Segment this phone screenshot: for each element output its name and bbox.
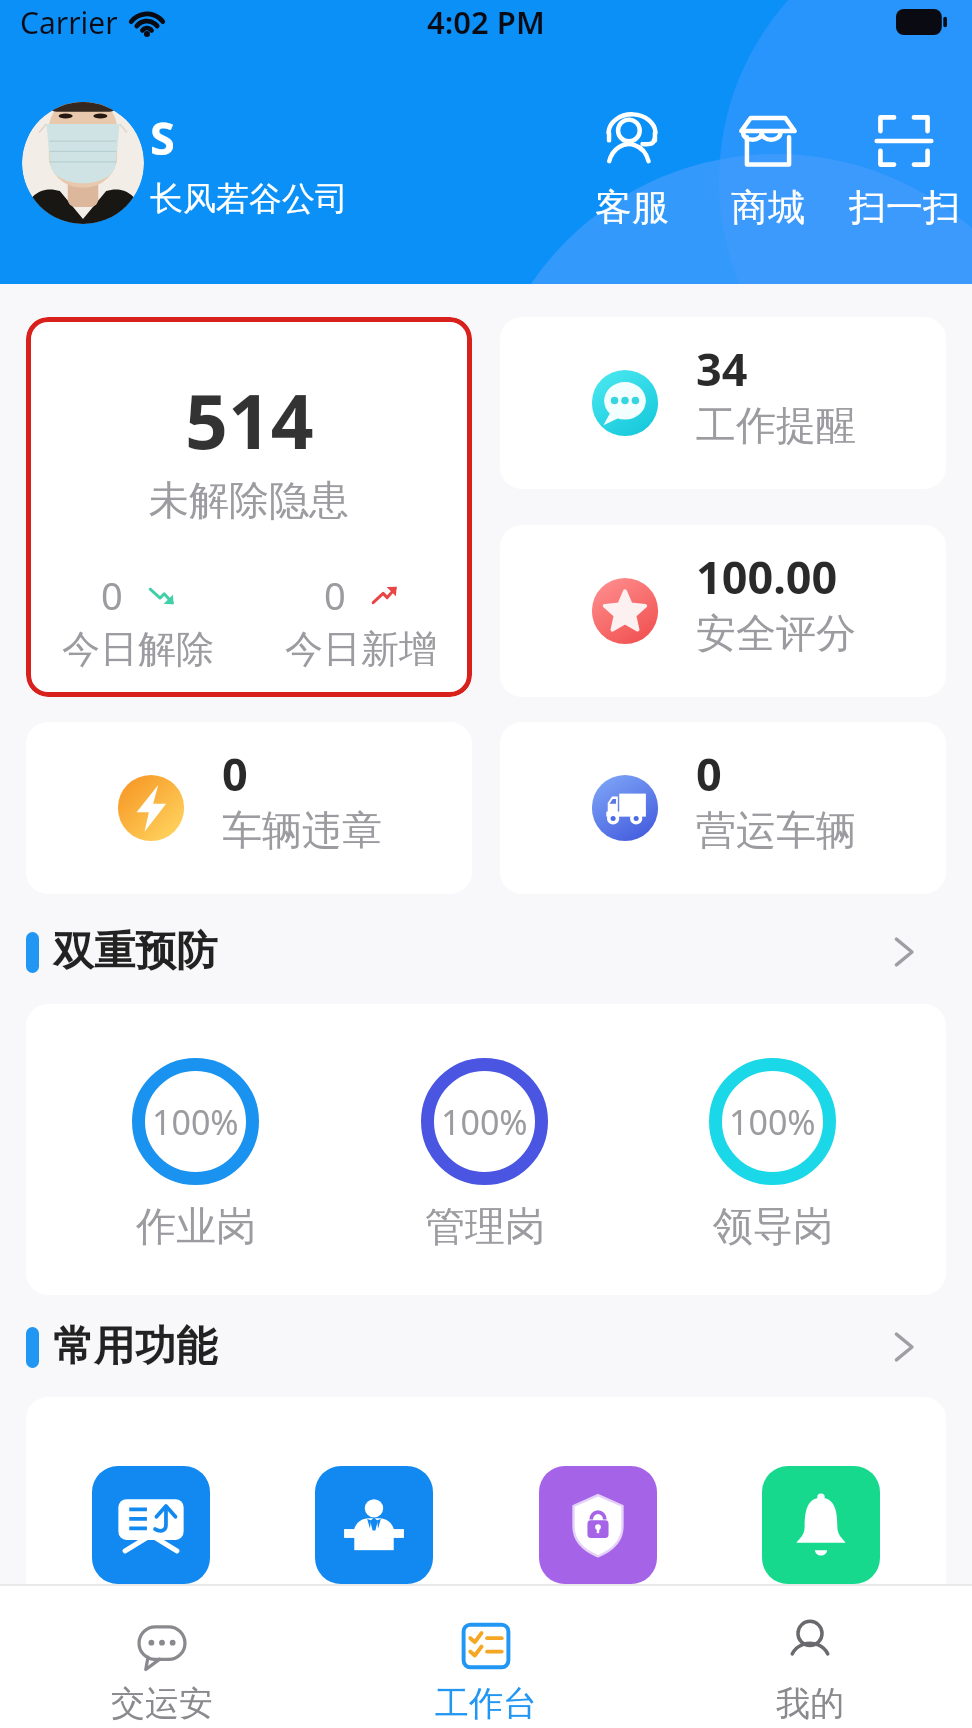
button[interactable]: 0 [500, 722, 946, 894]
staticText: 我的 [776, 1682, 844, 1725]
staticText: 34 [696, 338, 748, 399]
staticText: 扫一扫 [849, 184, 960, 231]
staticText: 未解除隐患 [149, 475, 349, 525]
button[interactable]: 商城 [700, 110, 836, 231]
staticText: 今日解除 [62, 625, 214, 673]
button[interactable]: 消息提醒 Alerts [762, 1466, 880, 1584]
staticText: 安全评分 [696, 608, 856, 658]
button[interactable]: 常用功能 [26, 1297, 946, 1397]
button[interactable]: 100% [709, 1058, 836, 1251]
staticText: 100% [441, 1099, 528, 1145]
button[interactable]: 双重预防 [26, 900, 946, 1004]
button[interactable]: 交运安 [0, 1618, 324, 1728]
staticText: 100% [152, 1099, 239, 1145]
button[interactable]: 514 [26, 317, 472, 697]
staticText: 0 [324, 569, 346, 621]
staticText: 0 [696, 743, 722, 804]
staticText: 营运车辆 [696, 805, 856, 855]
staticText: 车辆违章 [222, 805, 382, 855]
staticText: 100% [729, 1099, 816, 1145]
button[interactable]: 扫一扫 [836, 110, 972, 231]
button[interactable]: 客服 [564, 110, 700, 231]
staticText: 514 [185, 369, 314, 471]
button[interactable]: 岗位职责 Duty [315, 1466, 433, 1584]
staticText: 领导岗 [713, 1201, 833, 1251]
button[interactable]: 0 [26, 722, 472, 894]
button[interactable]: Profile [22, 102, 144, 224]
staticText: 双重预防 [53, 926, 217, 978]
staticText: S [150, 107, 175, 168]
button[interactable]: 34 [500, 317, 946, 489]
button[interactable]: 我的 [648, 1618, 972, 1728]
staticText: 工作台 [435, 1682, 537, 1725]
staticText: 长风若谷公司 [150, 178, 348, 220]
staticText: 管理岗 [425, 1201, 545, 1251]
staticText: 4:02 PM [427, 1, 545, 43]
staticText: 商城 [731, 184, 805, 231]
staticText: 常用功能 [53, 1321, 217, 1373]
staticText: 0 [101, 569, 123, 621]
button[interactable]: 工作台 [324, 1618, 648, 1728]
staticText: 作业岗 [136, 1201, 256, 1251]
button[interactable]: 100.00 [500, 525, 946, 697]
button[interactable]: 隐患上报 Report hazard [92, 1466, 210, 1584]
button[interactable]: 100% [132, 1058, 259, 1251]
staticText: 0 [222, 743, 248, 804]
staticText: 100.00 [696, 546, 838, 607]
staticText: Carrier [20, 2, 118, 43]
button[interactable]: 安全管理 Security [539, 1466, 657, 1584]
staticText: 客服 [595, 184, 669, 231]
staticText: 交运安 [111, 1682, 213, 1725]
staticText: 工作提醒 [696, 400, 856, 450]
button[interactable]: 100% [421, 1058, 548, 1251]
staticText: 今日新增 [285, 625, 437, 673]
